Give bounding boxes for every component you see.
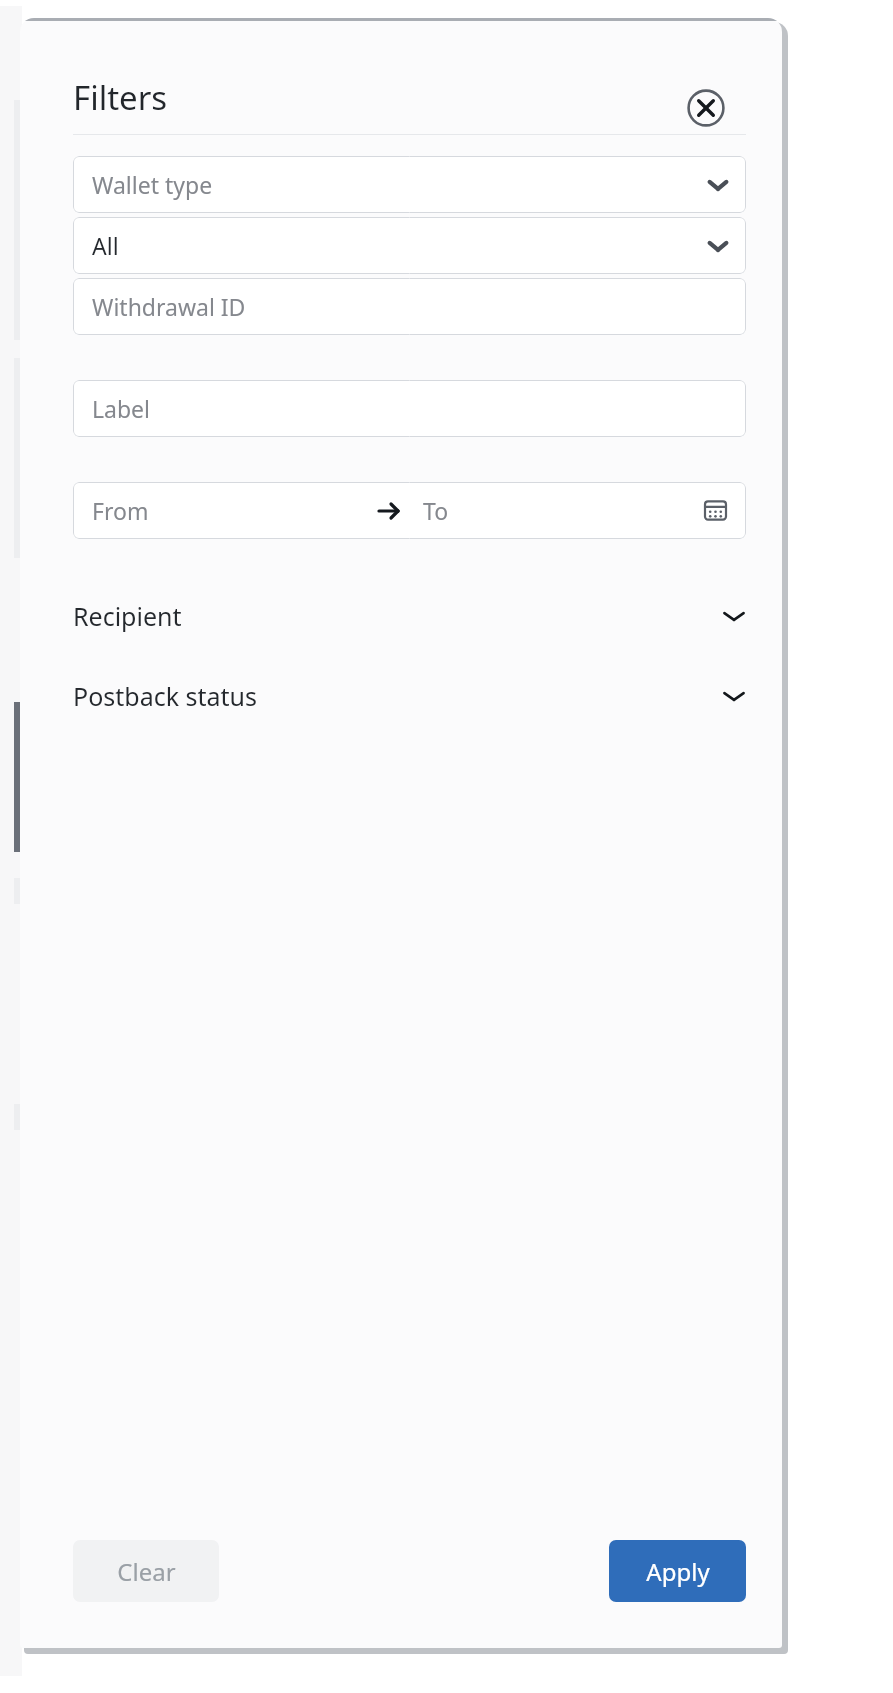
- button[interactable]: All: [73, 217, 746, 274]
- staticText: Clear: [117, 1555, 176, 1588]
- staticText: Label: [92, 393, 151, 424]
- button[interactable]: Postback status: [73, 668, 746, 724]
- staticText: Recipient: [73, 599, 182, 633]
- staticText: All: [92, 230, 119, 261]
- button[interactable]: Wallet type: [73, 156, 746, 213]
- staticText: From: [92, 495, 149, 526]
- button[interactable]: Close: [680, 82, 732, 134]
- button[interactable]: Withdrawal ID: [73, 278, 746, 335]
- staticText: Apply: [646, 1555, 710, 1588]
- staticText: Postback status: [73, 679, 257, 713]
- staticText: Wallet type: [92, 169, 213, 200]
- staticText: Filters: [73, 75, 168, 120]
- button[interactable]: Label: [73, 380, 746, 437]
- button[interactable]: Clear: [73, 1540, 219, 1602]
- button[interactable]: From: [73, 482, 746, 539]
- button[interactable]: Apply: [609, 1540, 746, 1602]
- staticText: Withdrawal ID: [92, 291, 246, 322]
- staticText: To: [423, 495, 449, 526]
- button[interactable]: Recipient: [73, 588, 746, 644]
